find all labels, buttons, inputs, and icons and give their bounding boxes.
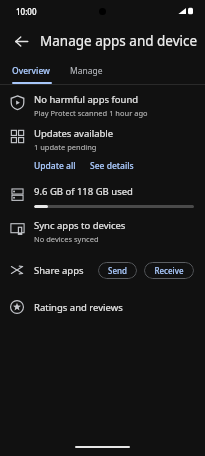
staticText: Update all — [34, 160, 76, 172]
staticText: Share apps — [34, 264, 84, 277]
staticText: 9.6 GB of 118 GB used — [34, 185, 133, 198]
staticText: Ratings and reviews — [34, 301, 123, 314]
staticText: Updates available — [34, 127, 114, 140]
staticText: Overview — [12, 65, 50, 77]
button[interactable]: Back — [6, 26, 36, 56]
staticText: 1 update pending — [34, 142, 97, 152]
staticText: See details — [90, 160, 134, 172]
button[interactable]: Ratings and reviews — [0, 289, 205, 325]
button[interactable]: Send — [98, 262, 137, 279]
staticText: Manage apps and device — [40, 32, 198, 50]
button[interactable]: Manage — [70, 60, 103, 82]
button[interactable]: Update all — [34, 160, 76, 172]
staticText: No harmful apps found — [34, 93, 139, 106]
button[interactable]: Receive — [144, 262, 194, 279]
staticText: Play Protect scanned 1 hour ago — [34, 108, 148, 118]
button[interactable]: Sync apps to devices — [0, 217, 205, 251]
button[interactable]: No harmful apps found — [0, 91, 205, 125]
button[interactable]: 9.6 GB of 118 GB used — [0, 183, 205, 217]
button[interactable]: See details — [90, 160, 134, 172]
staticText: Sync apps to devices — [34, 219, 126, 232]
button[interactable]: Overview — [12, 60, 50, 82]
staticText: 10:00 — [16, 6, 37, 17]
staticText: No devices synced — [34, 234, 99, 244]
staticText: Send — [108, 265, 127, 276]
staticText: Receive — [154, 265, 184, 276]
staticText: Manage — [70, 65, 103, 77]
